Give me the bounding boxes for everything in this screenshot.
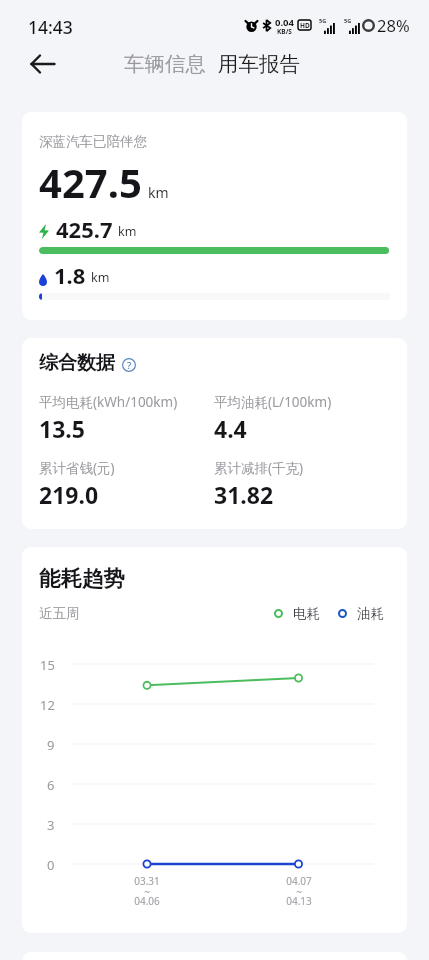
staticText: 5G: [344, 17, 352, 24]
staticText: 9: [47, 736, 55, 754]
staticText: 0.04: [275, 16, 294, 29]
staticText: 13.5: [39, 413, 85, 444]
staticText: 用车报告: [218, 51, 300, 77]
staticText: 车辆信息: [124, 51, 206, 77]
staticText: ~: [296, 885, 302, 899]
staticText: 油耗: [357, 605, 384, 622]
button[interactable]: 用车报告: [212, 45, 306, 83]
staticText: 427.5: [39, 155, 142, 209]
staticText: 28%: [377, 14, 410, 36]
staticText: 深蓝汽车已陪伴您: [39, 133, 147, 150]
button[interactable]: Help: [122, 358, 136, 372]
staticText: 电耗: [293, 605, 320, 622]
staticText: ?: [127, 359, 132, 372]
staticText: 3: [47, 816, 55, 834]
staticText: 4.4: [214, 413, 247, 444]
staticText: 近五周: [39, 605, 80, 622]
staticText: km: [91, 269, 110, 286]
staticText: 04.13: [286, 894, 312, 908]
staticText: 425.7: [56, 214, 113, 244]
staticText: 04.07: [286, 874, 312, 888]
staticText: 综合数据: [39, 351, 115, 375]
staticText: 平均油耗(L/100km): [214, 393, 332, 411]
staticText: KB/S: [277, 27, 292, 36]
staticText: 能耗趋势: [39, 565, 125, 592]
staticText: HD: [300, 21, 310, 30]
button[interactable]: Back: [20, 41, 65, 86]
staticText: 1.8: [54, 260, 86, 290]
staticText: km: [118, 223, 137, 240]
staticText: 累计减排(千克): [214, 459, 304, 477]
staticText: 12: [40, 696, 55, 714]
staticText: 5G: [319, 17, 327, 24]
staticText: ~: [144, 885, 150, 899]
staticText: km: [148, 183, 169, 202]
button[interactable]: 车辆信息: [118, 45, 212, 83]
staticText: 31.82: [214, 479, 274, 510]
staticText: 6: [47, 776, 55, 794]
staticText: 14:43: [28, 15, 73, 39]
staticText: 平均电耗(kWh/100km): [39, 393, 178, 411]
staticText: 15: [40, 656, 55, 674]
staticText: 03.31: [134, 874, 160, 888]
staticText: 219.0: [39, 479, 99, 510]
staticText: 0: [47, 856, 55, 874]
staticText: 累计省钱(元): [39, 459, 115, 477]
staticText: 04.06: [134, 894, 160, 908]
